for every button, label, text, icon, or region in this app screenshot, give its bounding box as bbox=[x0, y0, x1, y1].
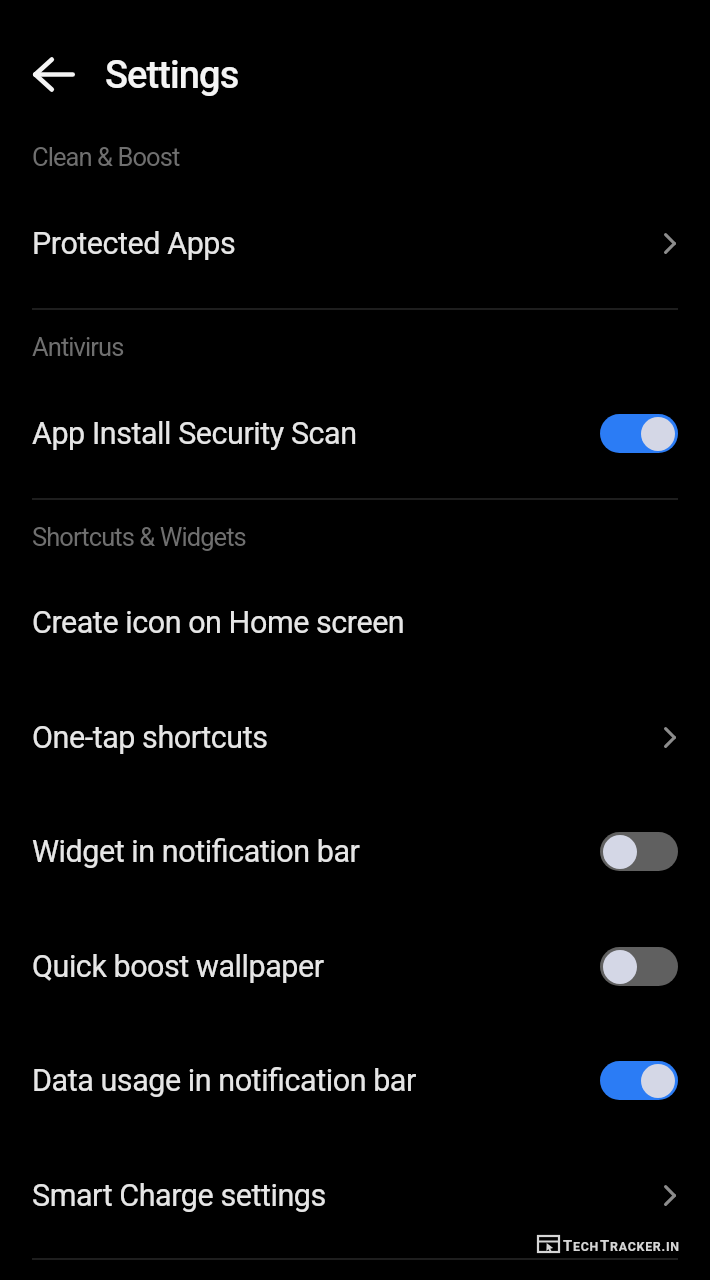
button[interactable]: Data usage in notification bar bbox=[600, 1061, 678, 1100]
staticText: T bbox=[600, 1237, 610, 1254]
button[interactable]: Quick boost wallpaper bbox=[0, 916, 710, 1016]
button[interactable]: Back bbox=[19, 39, 89, 109]
staticText: Data usage in notification bar bbox=[32, 1063, 600, 1099]
staticText: App Install Security Scan bbox=[32, 416, 600, 452]
button[interactable]: App Install Security Scan bbox=[0, 383, 710, 483]
staticText: Create icon on Home screen bbox=[32, 605, 678, 641]
button[interactable]: Smart Charge settings bbox=[0, 1145, 710, 1245]
staticText: Antivirus bbox=[32, 332, 124, 362]
staticText: Protected Apps bbox=[32, 226, 664, 262]
staticText: Shortcuts & Widgets bbox=[32, 522, 246, 552]
staticText: RACKER.IN bbox=[610, 1239, 680, 1254]
button[interactable]: Widget in notification bar bbox=[600, 832, 678, 871]
staticText: Smart Charge settings bbox=[32, 1178, 664, 1214]
button[interactable]: Create icon on Home screen bbox=[0, 572, 710, 672]
staticText: Settings bbox=[105, 53, 239, 98]
button[interactable]: Quick boost wallpaper bbox=[600, 947, 678, 986]
button[interactable]: Data usage in notification bar bbox=[0, 1030, 710, 1130]
button[interactable]: Widget in notification bar bbox=[0, 801, 710, 901]
staticText: Widget in notification bar bbox=[32, 834, 600, 870]
staticText: One-tap shortcuts bbox=[32, 720, 664, 756]
button[interactable]: Protected Apps bbox=[0, 193, 710, 293]
button[interactable]: App Install Security Scan bbox=[600, 414, 678, 453]
staticText: Quick boost wallpaper bbox=[32, 949, 600, 985]
button[interactable]: One-tap shortcuts bbox=[0, 687, 710, 787]
staticText: ECH bbox=[573, 1239, 600, 1254]
staticText: Clean & Boost bbox=[32, 142, 180, 172]
staticText: T bbox=[563, 1237, 573, 1254]
